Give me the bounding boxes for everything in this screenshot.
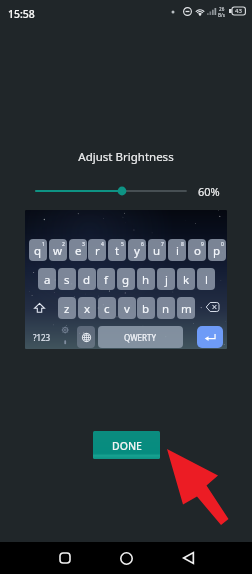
button[interactable]: s xyxy=(58,268,76,290)
staticText: 5 xyxy=(121,241,124,248)
button[interactable]: i xyxy=(168,239,186,261)
button[interactable]: y xyxy=(128,239,146,261)
button[interactable]: t xyxy=(108,239,126,261)
staticText: 26 xyxy=(219,6,225,12)
staticText: e xyxy=(75,243,82,259)
staticText: ?123 xyxy=(33,332,51,343)
button[interactable]: f xyxy=(97,268,115,290)
staticText: B/s xyxy=(218,12,225,18)
button[interactable]: w xyxy=(49,239,67,261)
button[interactable]: Shift xyxy=(34,302,45,314)
staticText: y xyxy=(134,243,140,259)
button[interactable]: Backspace xyxy=(206,302,219,312)
button[interactable]: c xyxy=(98,297,116,319)
staticText: 2 xyxy=(62,241,65,248)
staticText: t xyxy=(115,243,120,259)
staticText: z xyxy=(64,301,70,317)
button[interactable]: e xyxy=(69,239,87,261)
button[interactable]: n xyxy=(157,297,175,319)
button[interactable]: v xyxy=(118,297,136,319)
staticText: 0 xyxy=(221,241,224,248)
staticText: i xyxy=(176,243,179,259)
staticText: p xyxy=(213,243,221,259)
staticText: u xyxy=(153,243,161,259)
staticText: b xyxy=(142,301,150,317)
staticText: k xyxy=(183,272,190,288)
staticText: c xyxy=(104,301,110,317)
button[interactable]: d xyxy=(78,268,96,290)
button[interactable]: a xyxy=(38,268,56,290)
button[interactable]: l xyxy=(197,268,215,290)
staticText: q xyxy=(34,243,42,259)
button[interactable]: k xyxy=(177,268,195,290)
staticText: 43 xyxy=(235,7,242,15)
button[interactable]: p xyxy=(208,239,226,261)
button[interactable]: DONE xyxy=(93,431,160,459)
staticText: 6 xyxy=(141,241,144,248)
staticText: DONE xyxy=(112,439,142,453)
staticText: m xyxy=(181,301,192,317)
staticText: Adjust Brightness xyxy=(0,149,252,165)
staticText: 1 xyxy=(42,241,45,248)
staticText: d xyxy=(83,272,91,288)
button[interactable]: m xyxy=(177,297,195,319)
staticText: r xyxy=(95,243,100,259)
staticText: 3 xyxy=(82,241,85,248)
staticText: 7 xyxy=(161,241,164,248)
button[interactable]: u xyxy=(148,239,166,261)
staticText: h xyxy=(142,272,150,288)
staticText: o xyxy=(194,243,201,259)
button[interactable]: Back xyxy=(168,542,208,574)
button[interactable]: r xyxy=(88,239,106,261)
staticText: f xyxy=(104,272,108,288)
button[interactable]: Enter xyxy=(197,326,223,348)
staticText: s xyxy=(64,272,70,288)
button[interactable]: z xyxy=(58,297,76,319)
button[interactable]: o xyxy=(188,239,206,261)
staticText: 15:58 xyxy=(8,7,35,21)
button[interactable]: j xyxy=(157,268,175,290)
button[interactable]: ?123 xyxy=(29,326,55,348)
staticText: l xyxy=(205,272,208,288)
staticText: 4 xyxy=(101,241,104,248)
staticText: a xyxy=(44,272,51,288)
staticText: x xyxy=(84,301,91,317)
button[interactable]: g xyxy=(117,268,135,290)
staticText: w xyxy=(53,243,63,259)
staticText: QWERTY xyxy=(124,332,157,343)
staticText: 9 xyxy=(201,241,204,248)
staticText: n xyxy=(162,301,170,317)
staticText: 60% xyxy=(198,184,220,199)
button[interactable]: b xyxy=(137,297,155,319)
button[interactable]: Settings xyxy=(62,326,72,348)
button[interactable]: Recents xyxy=(45,542,85,574)
button[interactable]: x xyxy=(78,297,96,319)
staticText: g xyxy=(122,272,130,288)
button[interactable]: QWERTY xyxy=(98,326,183,348)
staticText: j xyxy=(165,272,168,288)
button[interactable]: Switch language xyxy=(77,326,95,348)
staticText: v xyxy=(124,301,130,317)
staticText: 8 xyxy=(181,241,184,248)
button[interactable]: q xyxy=(29,239,47,261)
button[interactable]: h xyxy=(137,268,155,290)
button[interactable]: Home xyxy=(106,542,146,574)
